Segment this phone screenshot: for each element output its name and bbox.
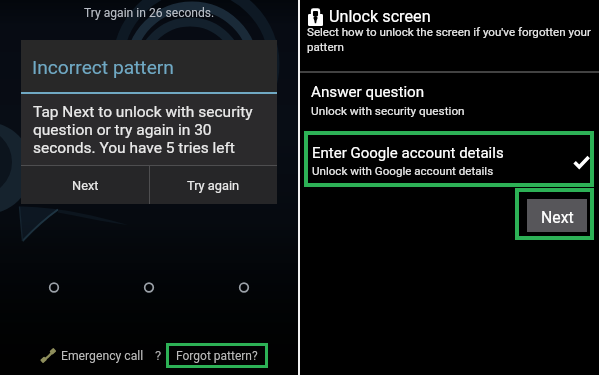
staticText: Enter Google account details bbox=[312, 144, 504, 162]
staticText: Try again bbox=[187, 178, 240, 193]
button[interactable]: Next bbox=[21, 166, 149, 204]
staticText: Next bbox=[541, 208, 574, 227]
staticText: Answer question bbox=[311, 83, 425, 101]
button[interactable]: Answer question bbox=[300, 80, 599, 128]
button[interactable]: Next bbox=[527, 199, 587, 232]
staticText: Select how to unlock the screen if you'v… bbox=[307, 25, 591, 54]
staticText: Tap Next to unlock with security questio… bbox=[33, 103, 253, 157]
staticText: Incorrect pattern bbox=[32, 56, 174, 79]
staticText: Unlock with security question bbox=[311, 104, 465, 118]
staticText: Emergency call bbox=[61, 349, 144, 363]
staticText: Next bbox=[72, 178, 99, 193]
staticText: Try again in 26 seconds. bbox=[84, 6, 215, 20]
staticText: Unlock with Google account details bbox=[312, 164, 494, 178]
button[interactable]: Try again bbox=[150, 166, 277, 204]
button[interactable]: Forgot pattern? bbox=[166, 343, 268, 368]
button[interactable]: Emergency call bbox=[40, 346, 144, 365]
button[interactable]: Help bbox=[152, 347, 165, 364]
staticText: Unlock screen bbox=[329, 7, 431, 26]
button[interactable]: Enter Google account details bbox=[304, 131, 594, 187]
staticText: Forgot pattern? bbox=[176, 349, 258, 363]
staticText: ? bbox=[155, 348, 162, 363]
